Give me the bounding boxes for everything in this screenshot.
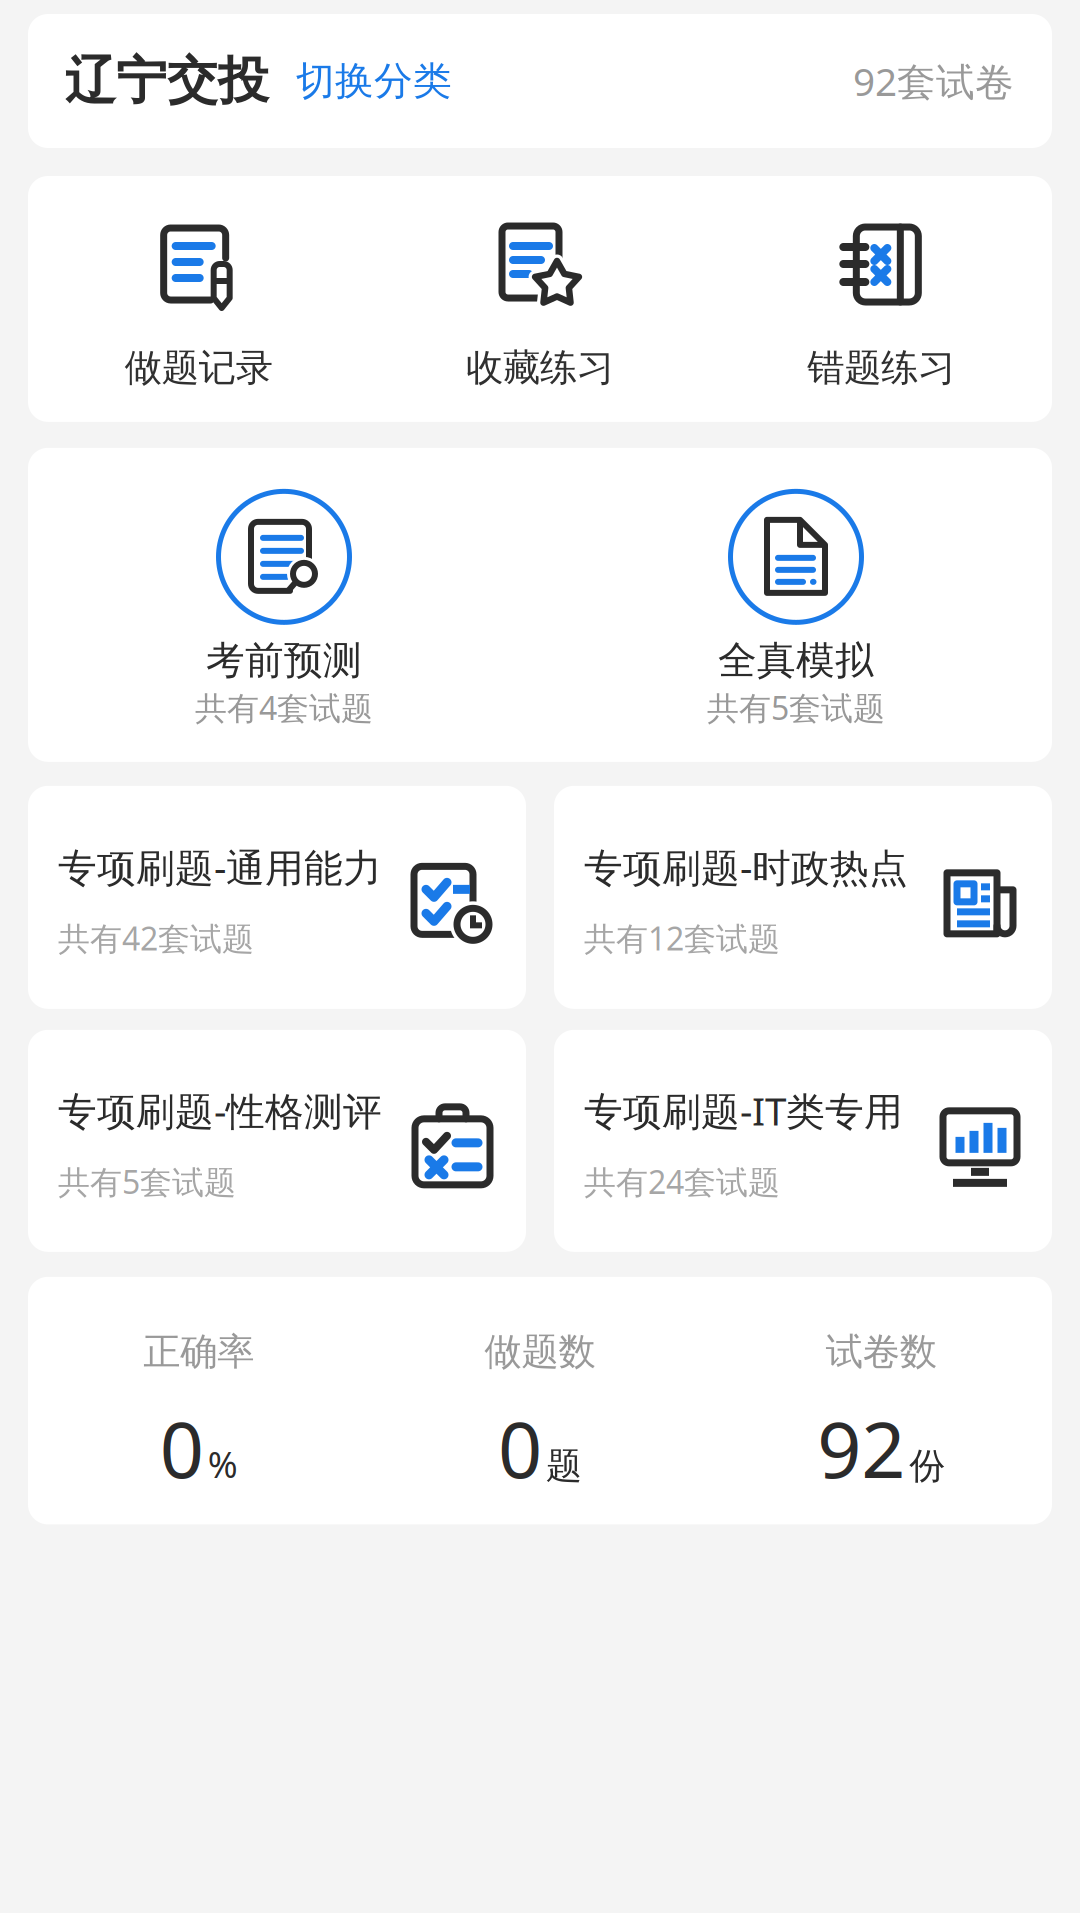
button[interactable]: 专项刷题-通用能力 (28, 786, 526, 1009)
staticText: 专项刷题-通用能力 (58, 841, 382, 893)
staticText: 做题数 (484, 1329, 595, 1375)
button[interactable]: 做题记录 (28, 222, 369, 391)
staticText: 共有5套试题 (58, 1160, 236, 1203)
button[interactable]: 辽宁交投 (28, 14, 1052, 148)
staticText: 92 (817, 1397, 905, 1499)
staticText: 做题记录 (125, 345, 273, 391)
staticText: 错题练习 (807, 345, 955, 391)
button[interactable]: 专项刷题-性格测评 (28, 1030, 526, 1252)
staticText: 共有5套试题 (707, 686, 885, 729)
staticText: 正确率 (143, 1329, 254, 1375)
staticText: 辽宁交投 (65, 50, 269, 112)
staticText: 专项刷题-性格测评 (58, 1085, 382, 1136)
staticText: 0 (160, 1397, 204, 1499)
staticText: 0 (498, 1397, 542, 1499)
button[interactable]: 专项刷题-时政热点 (554, 786, 1052, 1009)
staticText: 92套试卷 (853, 55, 1014, 107)
staticText: 专项刷题-时政热点 (584, 841, 908, 893)
button[interactable]: 考前预测 (28, 489, 540, 729)
staticText: 份 (909, 1444, 945, 1488)
staticText: 收藏练习 (466, 345, 614, 391)
button[interactable]: 全真模拟 (540, 489, 1052, 729)
staticText: % (208, 1440, 238, 1488)
staticText: 共有4套试题 (195, 686, 373, 729)
staticText: 共有24套试题 (584, 1160, 780, 1203)
staticText: 共有12套试题 (584, 917, 780, 959)
button[interactable]: 专项刷题-IT类专用 (554, 1030, 1052, 1252)
staticText: 题 (546, 1444, 582, 1488)
staticText: 全真模拟 (718, 637, 874, 684)
button[interactable]: 错题练习 (711, 222, 1052, 391)
staticText: 切换分类 (296, 57, 452, 105)
button[interactable]: 收藏练习 (369, 222, 711, 391)
staticText: 试卷数 (826, 1329, 937, 1375)
staticText: 考前预测 (206, 637, 362, 684)
staticText: 共有42套试题 (58, 917, 254, 959)
staticText: 专项刷题-IT类专用 (584, 1085, 903, 1136)
